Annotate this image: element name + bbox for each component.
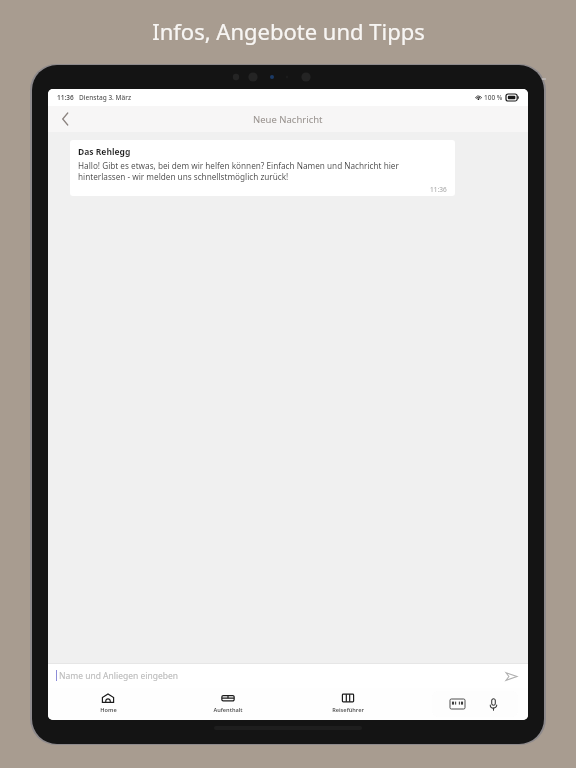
button[interactable]: Nachrichten bbox=[408, 688, 528, 720]
button[interactable]: Tastatur bbox=[446, 693, 468, 715]
staticText: 11:36 bbox=[430, 185, 447, 194]
button[interactable]: Senden bbox=[502, 667, 520, 685]
staticText: Home bbox=[100, 706, 117, 714]
staticText: Neue Nachricht bbox=[253, 113, 323, 126]
staticText: Das Rehlegg bbox=[78, 146, 131, 158]
staticText: Name und Anliegen eingeben bbox=[59, 670, 179, 682]
button[interactable]: Aufenthalt bbox=[168, 688, 288, 720]
button[interactable]: Das Rehlegg bbox=[70, 140, 455, 196]
staticText: Reiseführer bbox=[332, 706, 364, 714]
staticText: Dienstag 3. März bbox=[79, 93, 132, 102]
staticText: Infos, Angebote und Tipps bbox=[152, 16, 425, 46]
button[interactable]: Mikrofon bbox=[482, 693, 504, 715]
staticText: Aufenthalt bbox=[213, 706, 243, 714]
staticText: 100 % bbox=[484, 93, 503, 102]
button[interactable]: Home bbox=[48, 688, 168, 720]
staticText: Nachrichten bbox=[452, 706, 485, 714]
staticText: 11:36 bbox=[57, 93, 74, 102]
button[interactable]: Reiseführer bbox=[288, 688, 408, 720]
button[interactable]: Name und Anliegen eingeben bbox=[56, 663, 502, 688]
button[interactable]: Zurück bbox=[48, 106, 82, 132]
staticText: Hallo! Gibt es etwas, bei dem wir helfen… bbox=[78, 160, 447, 182]
